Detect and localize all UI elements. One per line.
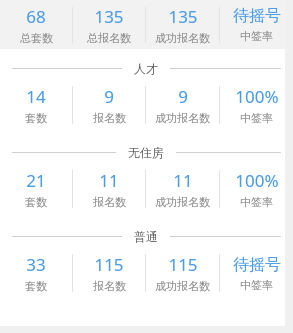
staticText: 成功报名数 — [155, 279, 210, 293]
button[interactable]: 9 — [73, 81, 145, 129]
staticText: 中签率 — [240, 195, 273, 209]
staticText: 总套数 — [20, 31, 53, 45]
button[interactable]: 100% — [220, 165, 293, 213]
staticText: 成功报名数 — [155, 195, 210, 209]
button[interactable]: 115 — [73, 249, 145, 297]
staticText: 总报名数 — [87, 31, 131, 45]
button[interactable]: 135 — [73, 1, 145, 49]
staticText: 人才 — [134, 61, 158, 76]
staticText: 21 — [26, 169, 46, 192]
staticText: 115 — [168, 253, 198, 276]
staticText: 报名数 — [93, 111, 126, 125]
staticText: 135 — [168, 5, 198, 28]
button[interactable]: 待摇号 — [220, 251, 293, 296]
button[interactable]: 待摇号 — [220, 2, 293, 47]
button[interactable]: 11 — [73, 165, 145, 213]
staticText: 11 — [173, 169, 193, 192]
staticText: 成功报名数 — [155, 111, 210, 125]
staticText: 68 — [26, 5, 46, 28]
staticText: 135 — [94, 5, 124, 28]
staticText: 100% — [235, 85, 279, 108]
staticText: 中签率 — [240, 29, 273, 43]
staticText: 9 — [178, 85, 188, 108]
button[interactable]: 21 — [0, 165, 72, 213]
staticText: 套数 — [25, 111, 47, 125]
button[interactable]: 11 — [146, 165, 219, 213]
staticText: 9 — [104, 85, 114, 108]
staticText: 报名数 — [93, 195, 126, 209]
button[interactable]: 100% — [220, 81, 293, 129]
staticText: 中签率 — [240, 278, 273, 292]
staticText: 成功报名数 — [155, 31, 210, 45]
button[interactable]: 115 — [146, 249, 219, 297]
staticText: 待摇号 — [233, 255, 281, 275]
staticText: 14 — [26, 85, 46, 108]
staticText: 11 — [99, 169, 119, 192]
staticText: 普通 — [134, 229, 158, 244]
button[interactable]: 9 — [146, 81, 219, 129]
staticText: 无住房 — [128, 145, 164, 160]
staticText: 套数 — [25, 279, 47, 293]
staticText: 33 — [26, 253, 46, 276]
button[interactable]: 68 — [0, 1, 72, 49]
staticText: 报名数 — [93, 279, 126, 293]
button[interactable]: 135 — [146, 1, 219, 49]
staticText: 中签率 — [240, 111, 273, 125]
button[interactable]: 14 — [0, 81, 72, 129]
staticText: 待摇号 — [233, 6, 281, 26]
staticText: 100% — [235, 169, 279, 192]
button[interactable]: 33 — [0, 249, 72, 297]
staticText: 套数 — [25, 195, 47, 209]
staticText: 115 — [94, 253, 124, 276]
